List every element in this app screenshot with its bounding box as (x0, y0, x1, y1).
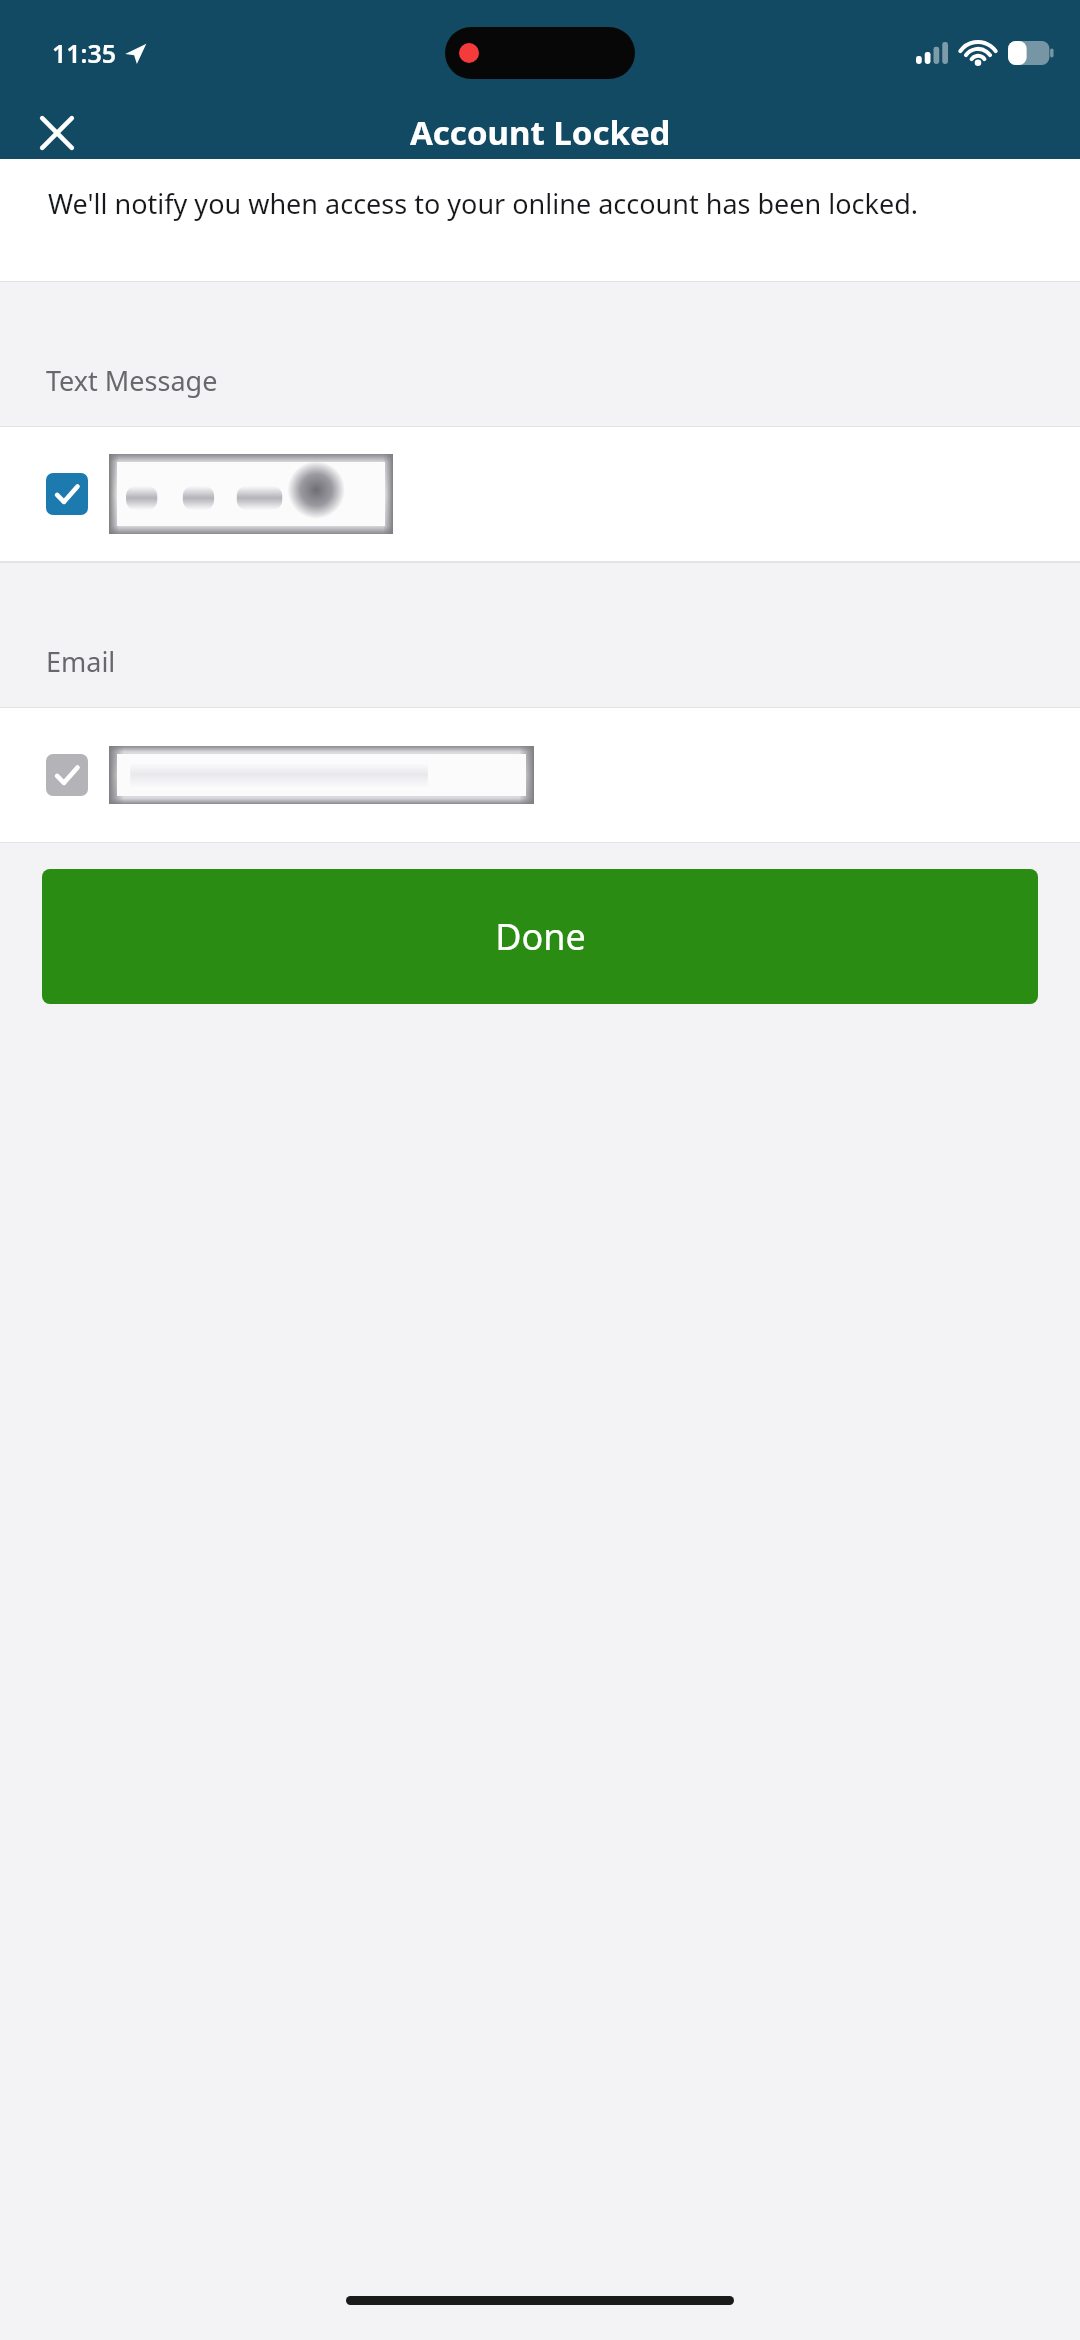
staticText: Text Message (46, 362, 218, 399)
staticText: Account Locked (410, 110, 671, 155)
staticText: 11:35 (52, 36, 117, 70)
button[interactable]: Done (42, 869, 1038, 1004)
button[interactable] (0, 707, 1080, 843)
button[interactable]: Close (22, 106, 92, 159)
button[interactable] (0, 426, 1080, 562)
staticText: Email (46, 643, 116, 680)
staticText: We'll notify you when access to your onl… (48, 185, 918, 222)
staticText: Done (495, 912, 586, 961)
